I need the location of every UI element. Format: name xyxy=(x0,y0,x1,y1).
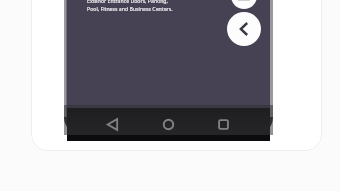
button[interactable]: Back xyxy=(227,12,261,46)
staticText: Pool, Fitness and Business Centers. xyxy=(87,5,173,12)
button[interactable]: Recent apps xyxy=(215,116,232,133)
button[interactable]: Home xyxy=(160,116,177,133)
button[interactable]: Back xyxy=(105,116,122,133)
button[interactable]: Keypad xyxy=(231,0,257,9)
staticText: Exterior Entrance Doors, Parking, xyxy=(87,0,168,4)
